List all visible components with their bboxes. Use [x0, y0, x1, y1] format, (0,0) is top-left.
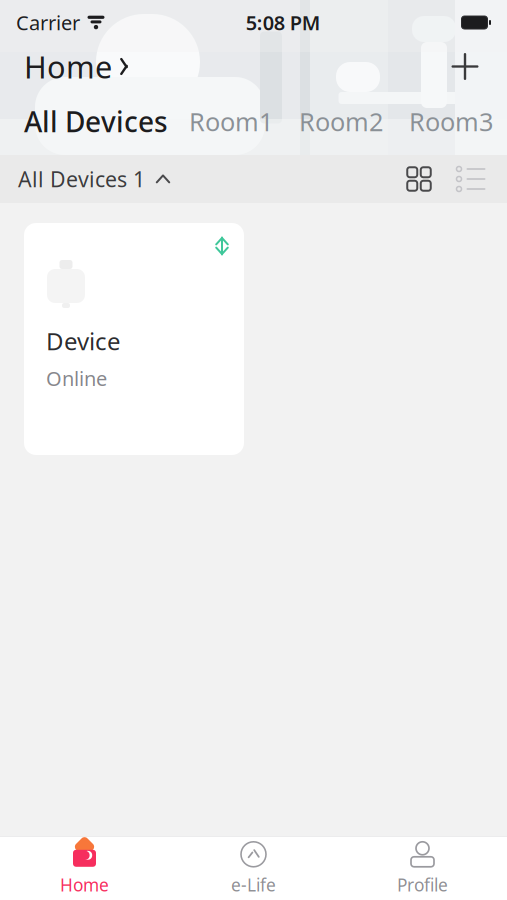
staticText: 5:08 PM — [246, 9, 321, 36]
staticText: All Devices 1 — [18, 165, 145, 193]
button[interactable]: Device — [24, 223, 244, 455]
staticText: Device — [46, 325, 121, 357]
staticText: Home — [24, 46, 112, 87]
button[interactable]: e-Life — [169, 837, 338, 900]
staticText: e-Life — [231, 873, 276, 896]
button[interactable]: Home — [0, 837, 169, 900]
staticText: Carrier — [16, 9, 80, 36]
staticText: Room2 — [299, 105, 383, 138]
staticText: Home — [60, 873, 109, 896]
button[interactable]: Grid view — [399, 159, 439, 199]
button[interactable]: All Devices — [16, 98, 176, 144]
button[interactable]: Room1 — [176, 98, 286, 144]
staticText: Online — [46, 365, 107, 391]
button[interactable]: All Devices 1 — [16, 157, 173, 201]
button[interactable]: Room2 — [286, 98, 396, 144]
staticText: Room1 — [189, 105, 273, 138]
button[interactable]: List view — [451, 159, 491, 199]
button[interactable]: Home — [20, 40, 134, 93]
button[interactable]: Add device — [443, 44, 487, 88]
staticText: Profile — [397, 873, 448, 896]
staticText: Room3 — [409, 105, 493, 138]
staticText: All Devices — [24, 103, 168, 140]
button[interactable]: Room3 — [396, 98, 506, 144]
button[interactable]: Profile — [338, 837, 507, 900]
